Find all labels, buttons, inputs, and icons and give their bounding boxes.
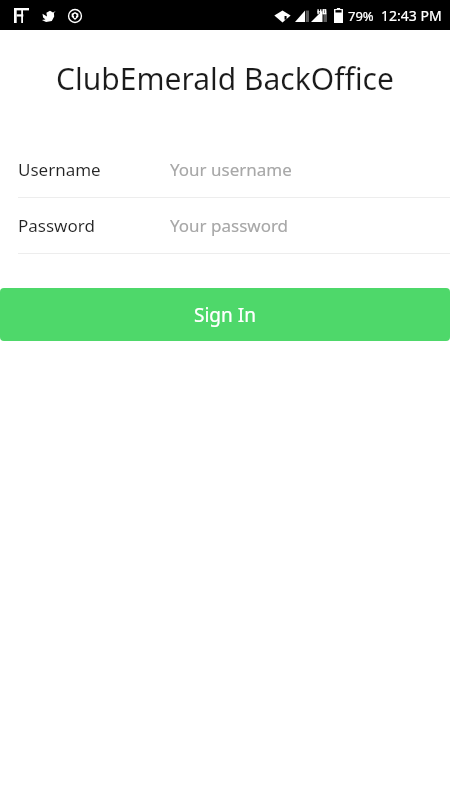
- staticText: Sign In: [194, 302, 256, 328]
- button[interactable]: Password: [0, 198, 450, 253]
- staticText: 12:43 PM: [381, 6, 442, 25]
- staticText: Your password: [170, 214, 289, 237]
- staticText: Username: [18, 158, 170, 181]
- staticText: ClubEmerald BackOffice: [0, 58, 450, 99]
- button[interactable]: Sign In: [0, 288, 450, 341]
- button[interactable]: Username: [0, 142, 450, 197]
- staticText: Password: [18, 214, 170, 237]
- staticText: 79%: [348, 7, 374, 25]
- staticText: Your username: [170, 158, 292, 181]
